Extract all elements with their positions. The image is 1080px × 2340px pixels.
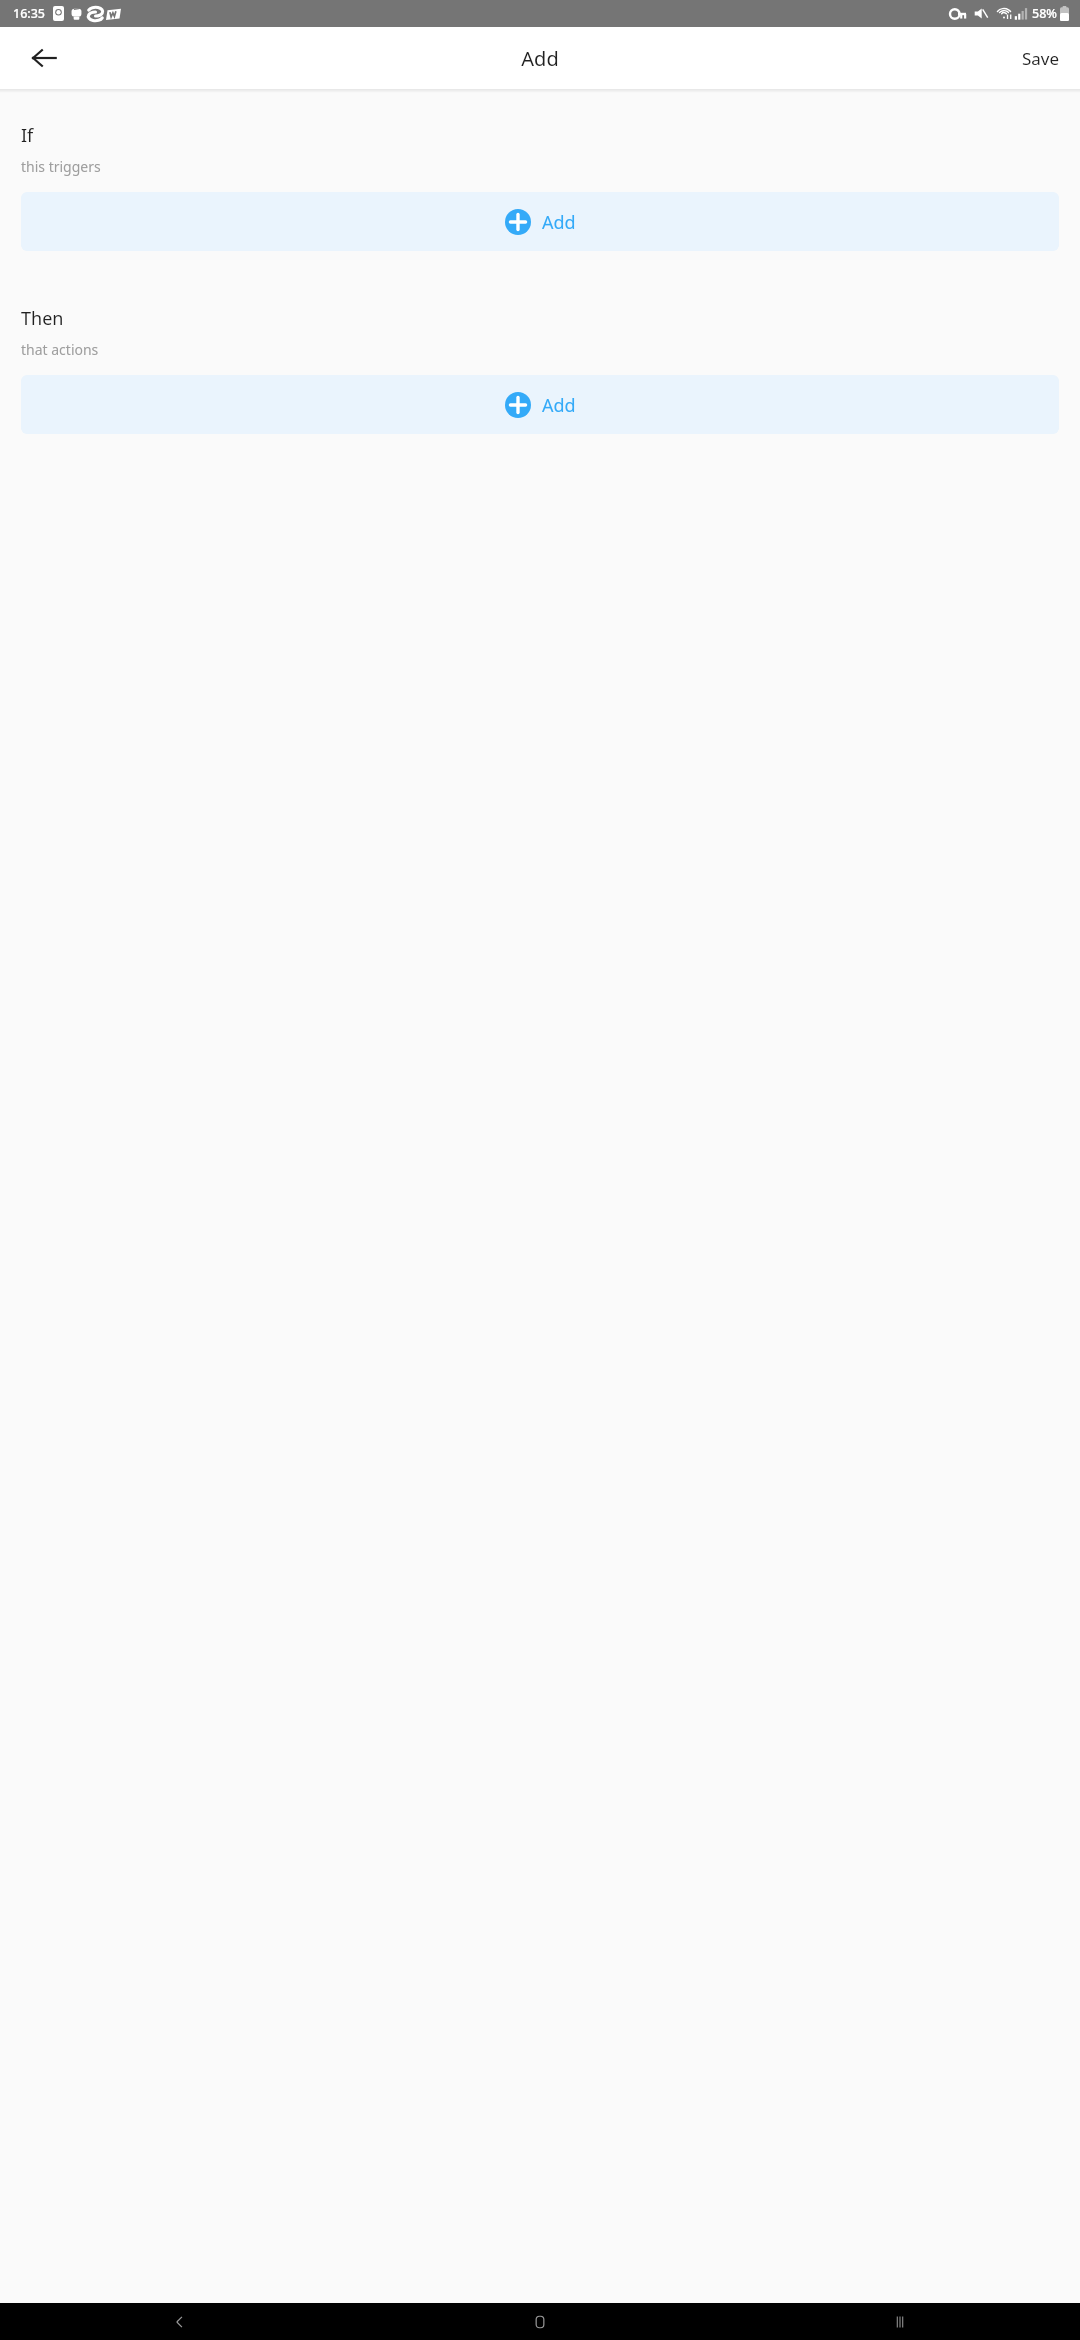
staticText: this triggers [21,157,101,176]
staticText: If [21,123,34,148]
staticText: 58% [1032,5,1057,22]
staticText: Then [21,306,64,331]
button[interactable]: Save [1002,35,1080,82]
button[interactable]: Back [20,34,68,82]
staticText: Add [542,210,576,235]
button[interactable]: Home [360,2303,720,2340]
staticText: Save [1022,47,1060,70]
staticText: Add [521,45,559,72]
button[interactable]: Add [21,192,1059,251]
staticText: that actions [21,340,99,359]
button[interactable]: Add [21,375,1059,434]
staticText: Add [542,393,576,418]
button[interactable]: Recent apps [720,2303,1080,2340]
button[interactable]: Back [0,2303,360,2340]
staticText: 16:35 [13,5,46,22]
